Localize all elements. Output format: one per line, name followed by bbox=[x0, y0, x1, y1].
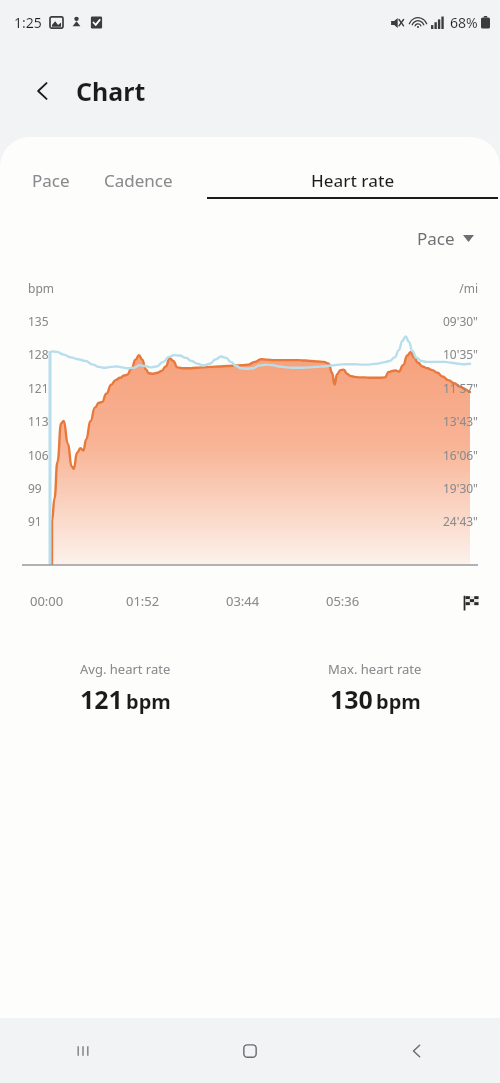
staticText: Avg. heart rate bbox=[80, 660, 171, 678]
button[interactable]: Pace bbox=[413, 223, 478, 254]
button[interactable]: Heart rate bbox=[205, 165, 500, 203]
staticText: 130 bbox=[330, 682, 373, 716]
button[interactable]: Max. heart rate bbox=[250, 656, 500, 720]
staticText: 128 bbox=[28, 346, 49, 362]
staticText: 03:44 bbox=[226, 592, 260, 610]
staticText: 01:52 bbox=[126, 592, 160, 610]
button[interactable]: Back bbox=[333, 1018, 500, 1083]
button[interactable]: Avg. heart rate bbox=[0, 656, 250, 720]
staticText: 113 bbox=[28, 413, 49, 429]
staticText: 121 bbox=[80, 682, 123, 716]
staticText: 19'30" bbox=[442, 480, 478, 496]
staticText: bpm bbox=[28, 280, 54, 296]
button[interactable]: Recents bbox=[0, 1018, 166, 1083]
staticText: Chart bbox=[76, 74, 146, 108]
staticText: 99 bbox=[28, 480, 42, 496]
staticText: 24'43" bbox=[442, 513, 478, 529]
staticText: 11'57" bbox=[442, 380, 478, 396]
staticText: 16'06" bbox=[442, 447, 478, 463]
staticText: 13'43" bbox=[442, 413, 478, 429]
staticText: /mi bbox=[459, 280, 478, 296]
staticText: 00:00 bbox=[30, 592, 64, 610]
staticText: 68% bbox=[450, 13, 478, 32]
staticText: 09'30" bbox=[442, 313, 478, 329]
staticText: 91 bbox=[28, 513, 42, 529]
button[interactable]: Cadence bbox=[102, 165, 175, 203]
staticText: 106 bbox=[28, 447, 49, 463]
other: Finish bbox=[462, 594, 480, 612]
button[interactable]: Back bbox=[26, 74, 60, 108]
staticText: bpm bbox=[376, 688, 421, 715]
staticText: Pace bbox=[32, 169, 70, 192]
button[interactable]: Pace bbox=[30, 165, 72, 203]
staticText: Heart rate bbox=[311, 169, 395, 192]
staticText: 121 bbox=[28, 380, 49, 396]
staticText: Max. heart rate bbox=[328, 660, 422, 678]
staticText: Cadence bbox=[104, 169, 173, 192]
staticText: Pace bbox=[417, 227, 455, 250]
staticText: bpm bbox=[126, 688, 171, 715]
staticText: 05:36 bbox=[326, 592, 360, 610]
staticText: 1:25 bbox=[14, 13, 42, 32]
button[interactable]: Home bbox=[166, 1018, 333, 1083]
staticText: 135 bbox=[28, 313, 49, 329]
staticText: 10'35" bbox=[442, 346, 478, 362]
